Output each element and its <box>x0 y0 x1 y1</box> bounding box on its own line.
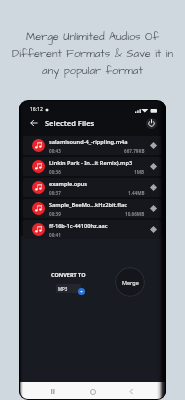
button[interactable]: Linkin Park - In...it Remix).mp3 <box>23 157 162 176</box>
button[interactable]: Sample_BeeMo...kHz2bit.flac <box>23 199 162 218</box>
button[interactable]: Merge <box>115 267 145 297</box>
button[interactable]: Reorder <box>148 224 159 235</box>
button[interactable]: example.opus <box>23 178 162 197</box>
staticText: ff-16b-1c-44100hz.aac <box>49 222 108 230</box>
staticText: 00:41 <box>49 232 61 238</box>
staticText: Merge <box>122 279 139 286</box>
staticText: 1MB <box>134 169 145 175</box>
button[interactable]: ff-16b-1c-44100hz.aac <box>23 220 162 239</box>
button[interactable]: Reorder <box>148 161 159 172</box>
staticText: salamisound-4_-rippling.m4a <box>49 138 128 146</box>
staticText: 10.66MB <box>125 211 145 217</box>
staticText: Sample_BeeMo...kHz2bit.flac <box>49 201 128 209</box>
staticText: 00:36 <box>49 169 61 175</box>
staticText: example.opus <box>49 180 88 188</box>
button[interactable]: Options <box>145 117 158 130</box>
button[interactable]: Recents <box>48 386 59 397</box>
staticText: 00:39 <box>49 211 61 217</box>
button[interactable]: Change format <box>78 288 85 295</box>
staticText: 16:12 <box>30 106 43 113</box>
button[interactable]: Back <box>28 117 40 129</box>
button[interactable]: Reorder <box>148 182 159 193</box>
button[interactable]: Reorder <box>148 140 159 151</box>
button[interactable]: salamisound-4_-rippling.m4a <box>23 136 162 155</box>
staticText: Merge Unlimited Audios Of Different Form… <box>12 29 173 79</box>
button[interactable]: MP3 <box>56 284 81 293</box>
button[interactable]: Back <box>126 386 137 397</box>
staticText: Selected Files <box>45 118 95 128</box>
button[interactable]: Home <box>87 386 98 397</box>
button[interactable]: Reorder <box>148 203 159 214</box>
staticText: CONVERT TO <box>51 271 86 278</box>
staticText: MP3 <box>58 286 68 292</box>
staticText: 667.79KB <box>124 148 145 154</box>
staticText: 00:43 <box>49 148 61 154</box>
staticText: 1.44MB <box>128 190 145 196</box>
staticText: Linkin Park - In...it Remix).mp3 <box>49 159 133 167</box>
staticText: 00:37 <box>49 190 61 196</box>
